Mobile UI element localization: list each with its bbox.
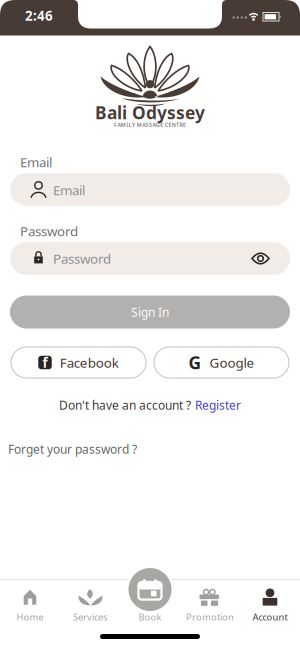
button[interactable]: Promotion	[178, 563, 242, 623]
button[interactable]: f	[11, 347, 146, 378]
button[interactable]: G	[154, 347, 289, 378]
staticText: FAMILY MASSAGE CENTRE	[114, 121, 186, 128]
button[interactable]: Home	[0, 563, 60, 623]
button[interactable]: Sign In	[10, 295, 290, 328]
staticText: Password	[20, 222, 78, 240]
staticText: Don't have an account ?	[59, 397, 191, 413]
button[interactable]: Book	[123, 561, 177, 624]
staticText: Register	[195, 397, 241, 413]
button[interactable]: Show password	[0, 0, 300, 649]
button[interactable]: Account	[240, 563, 300, 623]
staticText: G	[188, 351, 201, 374]
staticText: Email	[53, 181, 85, 199]
staticText: Account	[252, 611, 287, 623]
button[interactable]: Register	[195, 397, 241, 413]
staticText: Bali Odyssey	[95, 101, 205, 124]
staticText: Password	[53, 250, 111, 267]
staticText: Forget your password ?	[8, 441, 137, 457]
staticText: Promotion	[186, 611, 234, 623]
staticText: Sign In	[131, 304, 169, 320]
staticText: f	[42, 354, 47, 371]
staticText: Book	[138, 611, 161, 623]
button[interactable]: Services	[60, 563, 120, 623]
staticText: Services	[73, 611, 107, 623]
button[interactable]: Password	[10, 242, 290, 275]
staticText: Email	[20, 153, 52, 171]
staticText: Google	[209, 354, 254, 371]
staticText: 2:46	[25, 7, 53, 24]
button[interactable]: Email	[10, 173, 290, 206]
button[interactable]: Forget your password ?	[10, 442, 290, 456]
staticText: Facebook	[60, 354, 119, 371]
staticText: Home	[16, 611, 43, 623]
